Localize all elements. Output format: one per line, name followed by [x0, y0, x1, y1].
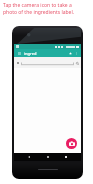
staticText: ingred	[24, 51, 37, 56]
button[interactable]: Open navigation drawer	[16, 50, 22, 56]
button[interactable]: Recent apps	[63, 154, 69, 160]
button[interactable]: Search	[75, 61, 79, 65]
button[interactable]: Favorites	[67, 50, 73, 56]
button[interactable]: Clear	[16, 61, 20, 65]
button[interactable]	[21, 57, 74, 68]
staticText: Tap the camera icon to take a photo of t…	[3, 2, 75, 16]
button[interactable]: Take photo with camera	[66, 138, 77, 149]
button[interactable]: More options	[73, 50, 79, 56]
button[interactable]: Home	[45, 154, 51, 160]
button[interactable]: Back	[26, 154, 32, 160]
